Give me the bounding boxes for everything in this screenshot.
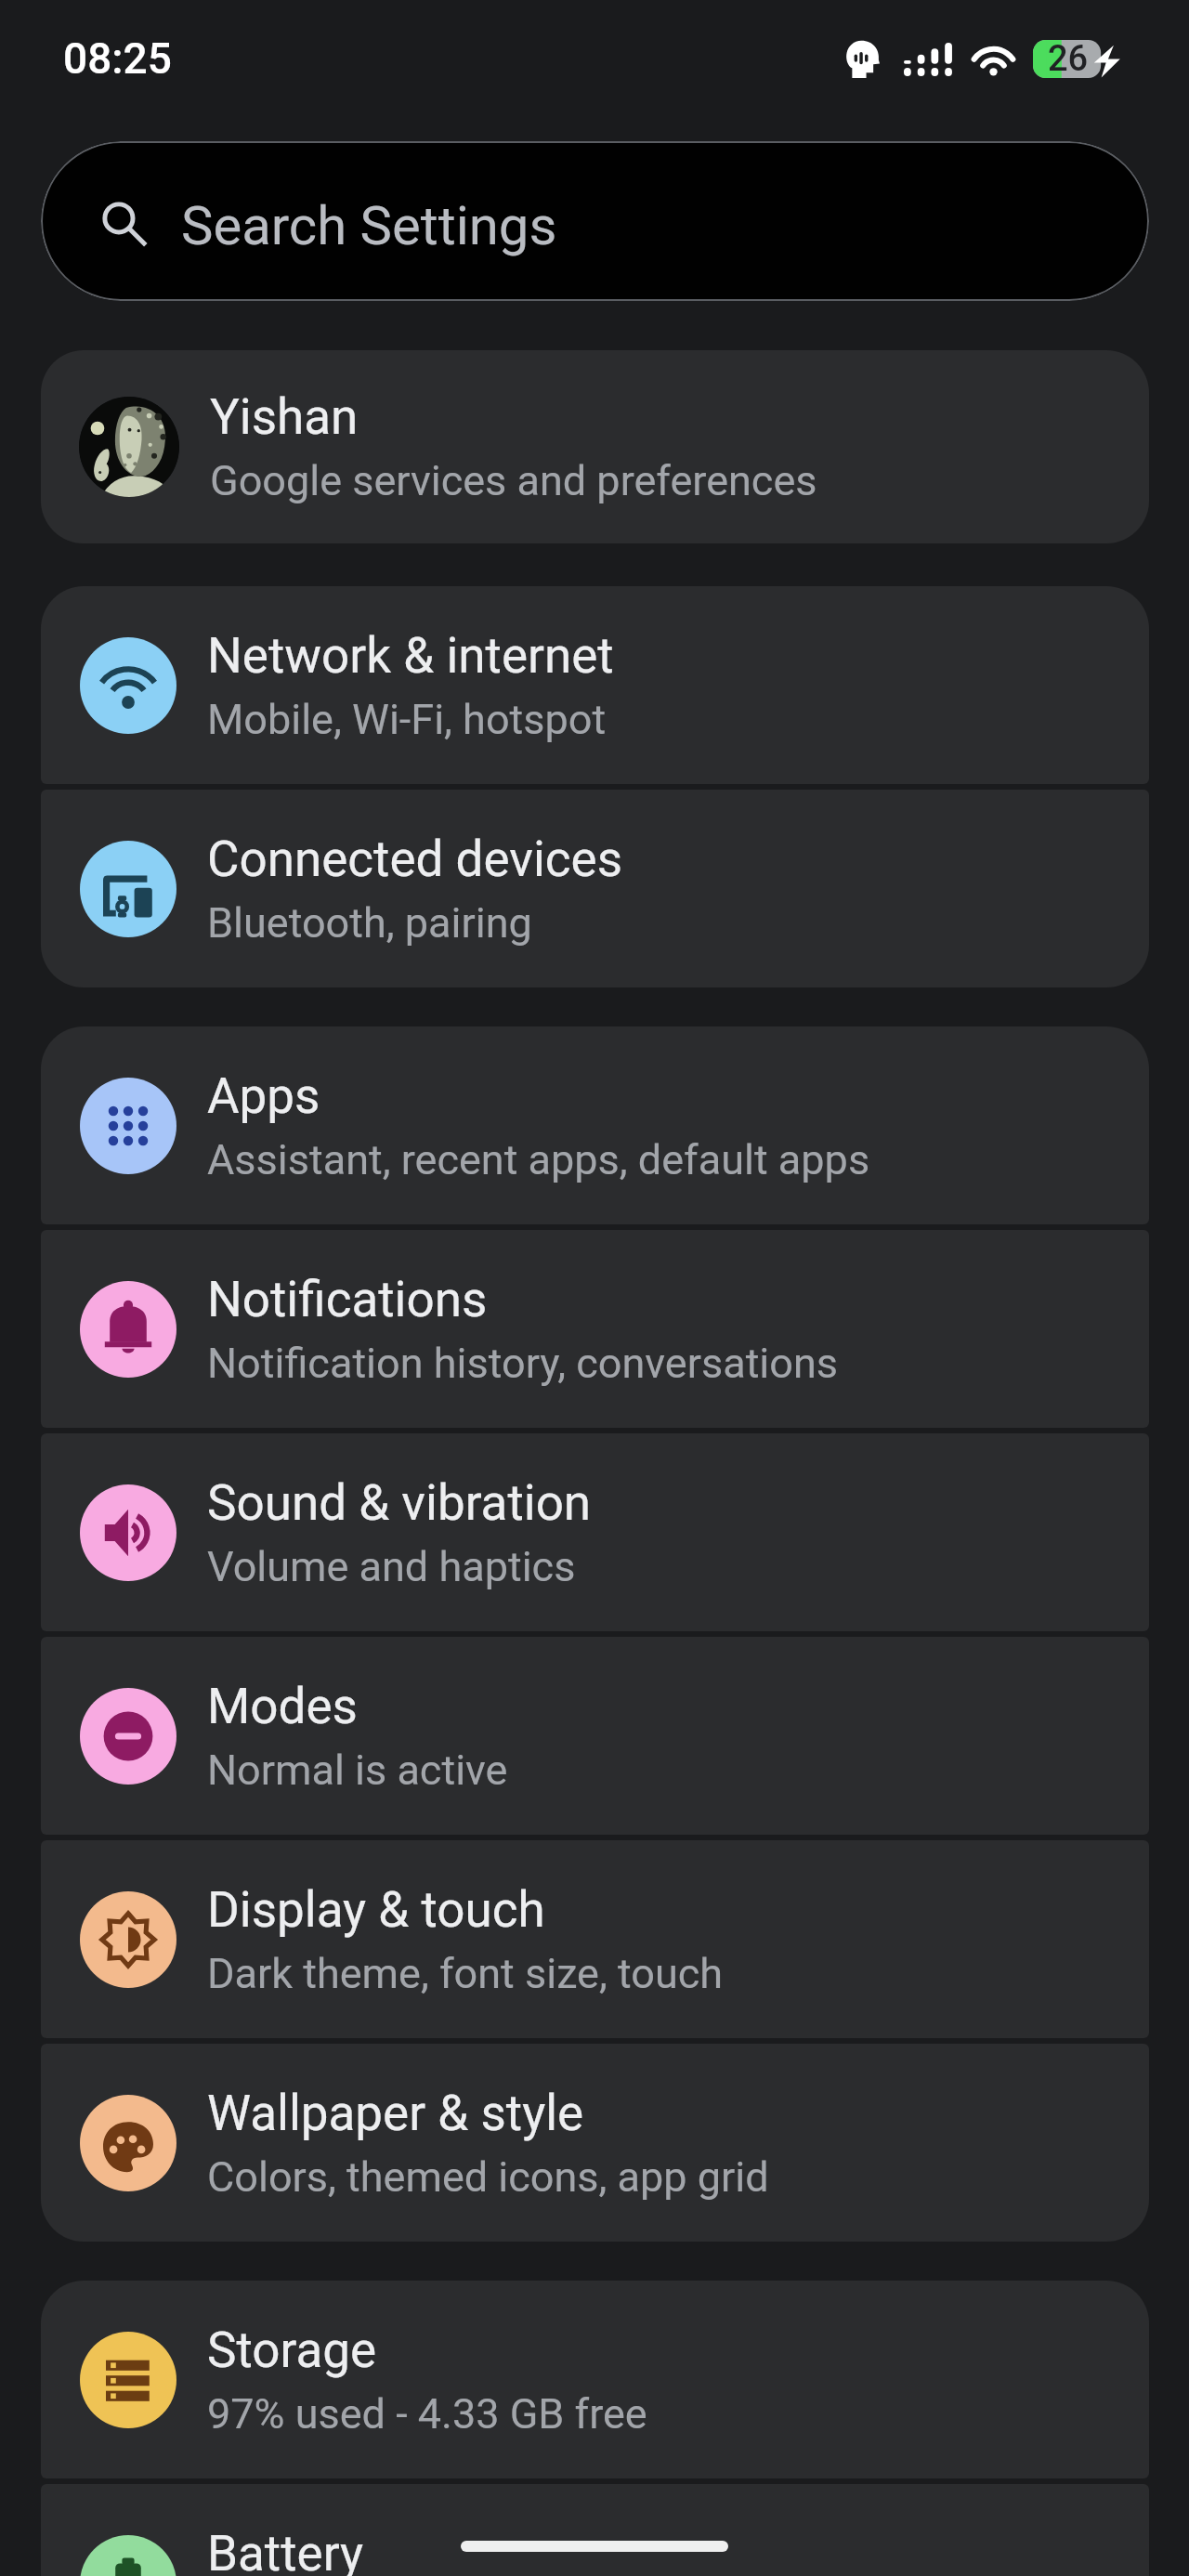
button[interactable]: Network & internet — [41, 586, 1149, 784]
staticText: Normal is active — [207, 1746, 508, 1795]
button[interactable]: Storage — [41, 2281, 1149, 2478]
staticText: 97% used - 4.33 GB free — [207, 2389, 647, 2439]
staticText: 08:25 — [63, 33, 172, 84]
button[interactable]: Yishan — [41, 350, 1149, 543]
button[interactable]: Wallpaper & style — [41, 2044, 1149, 2242]
staticText: Yishan — [210, 388, 359, 446]
staticText: Wallpaper & style — [207, 2085, 584, 2142]
staticText: Dark theme, font size, touch — [207, 1949, 724, 1998]
staticText: Apps — [207, 1067, 320, 1125]
staticText: Search Settings — [181, 194, 557, 257]
staticText: Assistant, recent apps, default apps — [207, 1135, 870, 1184]
staticText: Display & touch — [207, 1881, 545, 1939]
staticText: Storage — [207, 2321, 377, 2379]
button[interactable]: Connected devices — [41, 790, 1149, 987]
button[interactable]: Display & touch — [41, 1840, 1149, 2038]
staticText: Bluetooth, pairing — [207, 898, 532, 948]
staticText: Colors, themed icons, app grid — [207, 2152, 769, 2202]
staticText: Battery — [207, 2525, 364, 2576]
staticText: Notifications — [207, 1271, 488, 1328]
staticText: Connected devices — [207, 830, 623, 888]
staticText: Google services and preferences — [210, 456, 817, 505]
button[interactable]: Notifications — [41, 1230, 1149, 1428]
button[interactable]: Search Settings — [41, 141, 1149, 301]
button[interactable]: Modes — [41, 1637, 1149, 1835]
staticText: Mobile, Wi-Fi, hotspot — [207, 695, 607, 744]
staticText: Volume and haptics — [207, 1542, 576, 1591]
staticText: Modes — [207, 1678, 358, 1735]
staticText: Sound & vibration — [207, 1474, 592, 1532]
button[interactable]: Sound & vibration — [41, 1433, 1149, 1631]
staticText: Notification history, conversations — [207, 1339, 839, 1388]
staticText: Network & internet — [207, 627, 614, 685]
button[interactable]: Battery — [41, 2484, 1149, 2576]
button[interactable]: Apps — [41, 1026, 1149, 1224]
staticText: 26 — [1048, 38, 1089, 80]
